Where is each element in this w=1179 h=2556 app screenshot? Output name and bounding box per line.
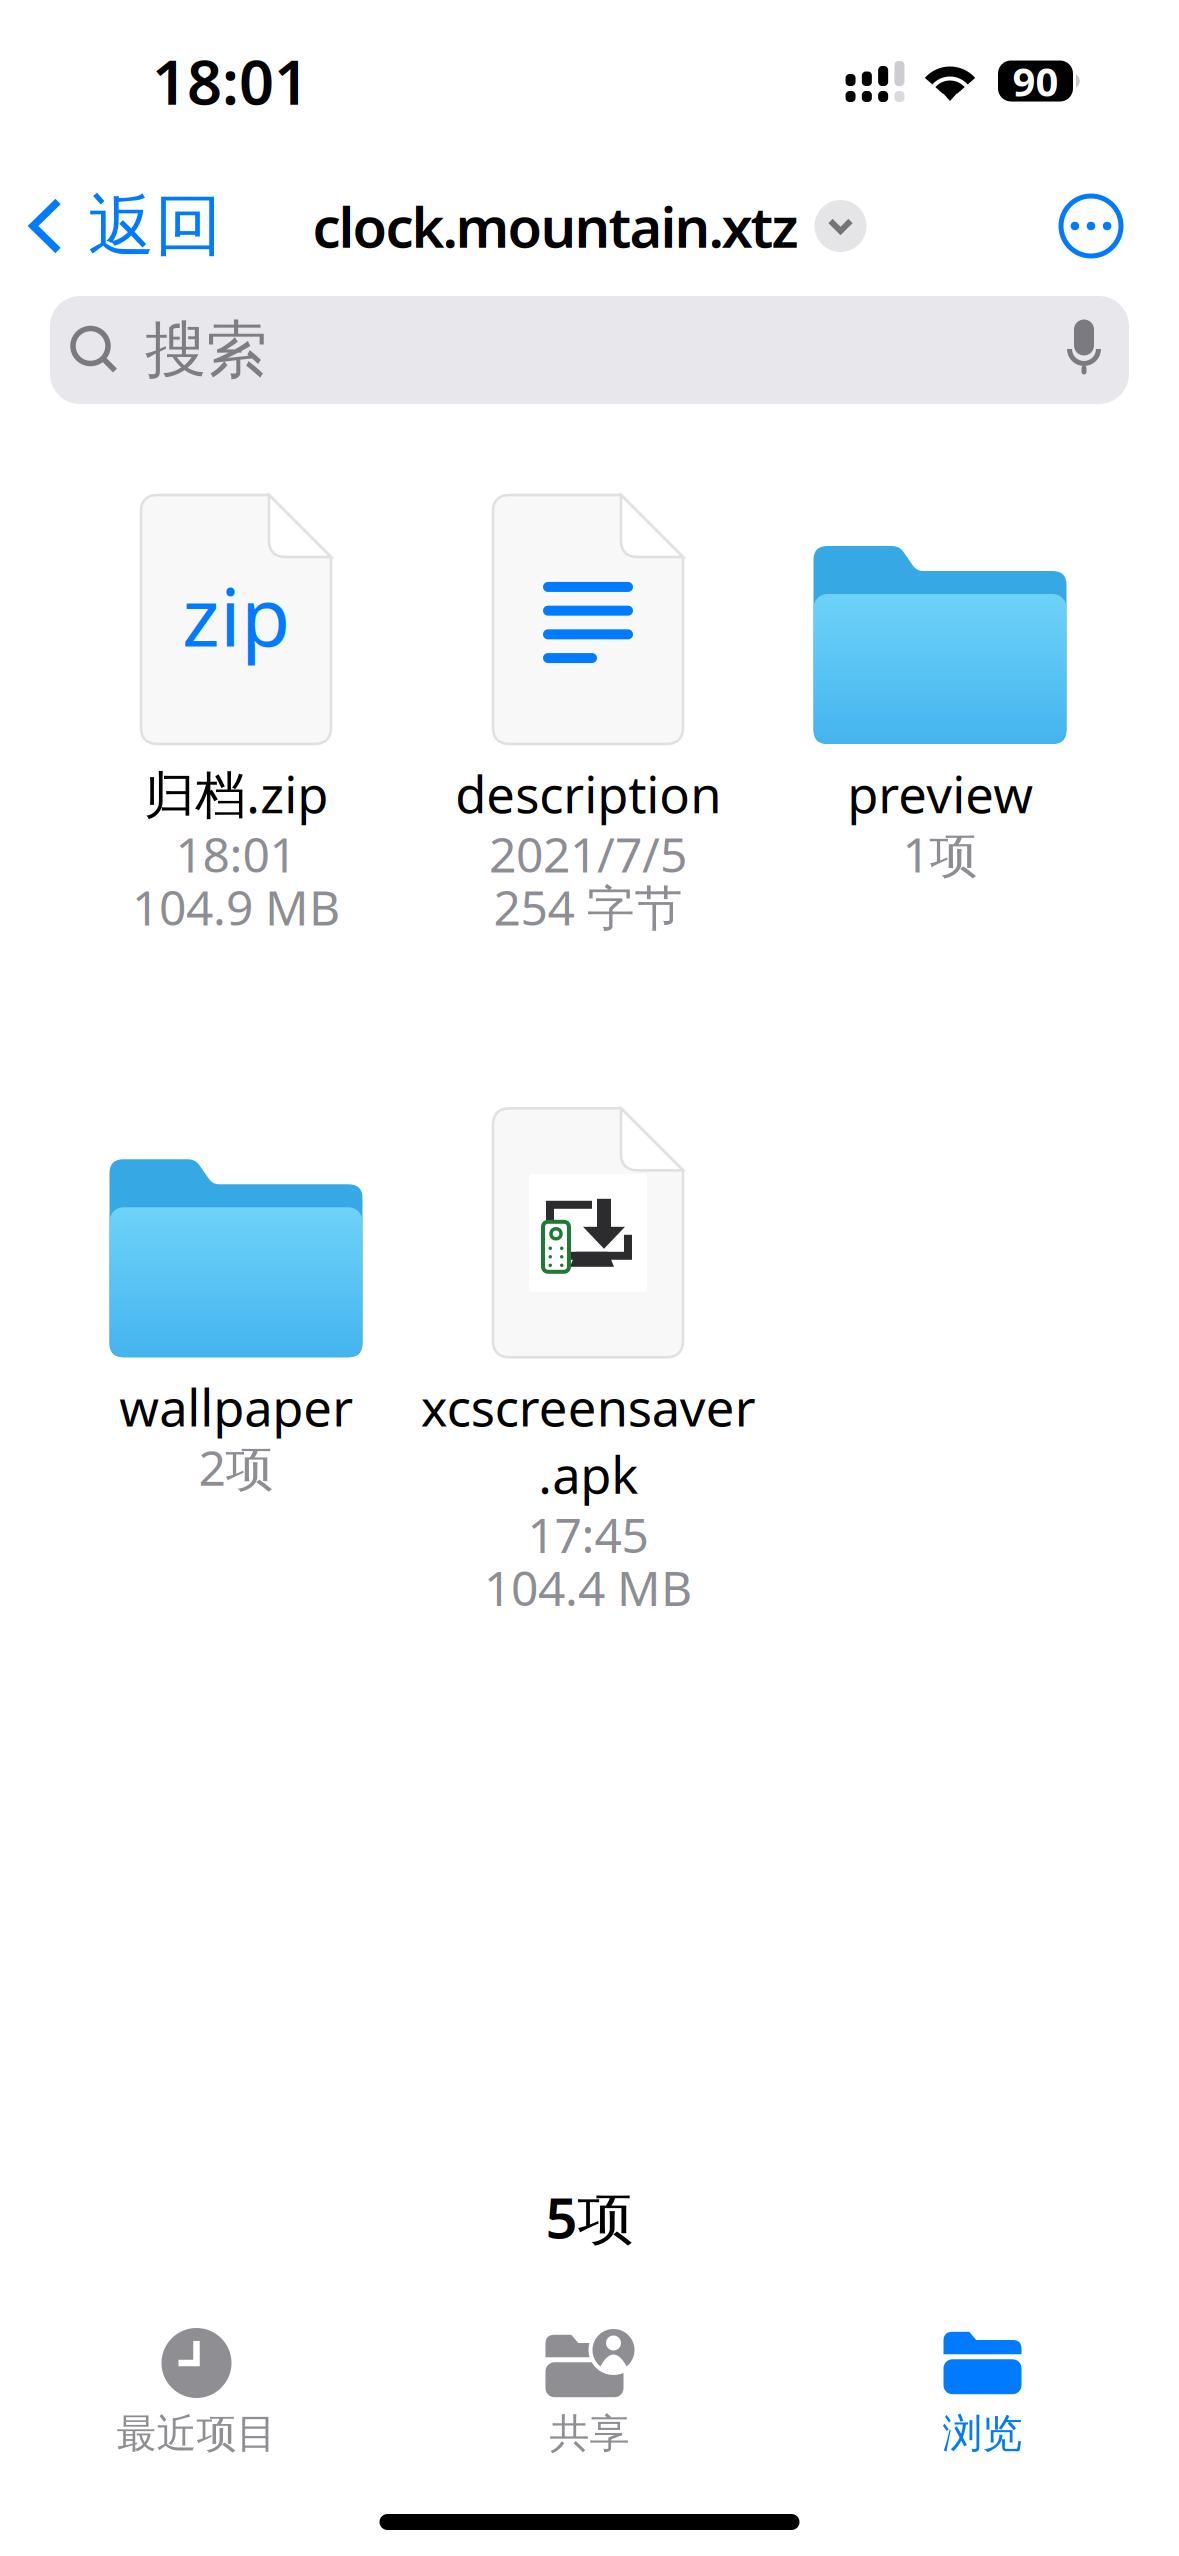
- button[interactable]: zip: [60, 494, 412, 933]
- staticText: 最近项目: [116, 2409, 276, 2458]
- button[interactable]: 浏览: [786, 2326, 1179, 2484]
- button[interactable]: preview: [764, 494, 1116, 933]
- staticText: 18:01: [175, 822, 296, 886]
- staticText: 5项: [545, 2180, 633, 2254]
- staticText: xcscreensaver .apk: [420, 1373, 755, 1508]
- staticText: 2项: [198, 1435, 273, 1499]
- staticText: 18:01: [152, 40, 309, 122]
- staticText: 共享: [549, 2409, 629, 2458]
- button[interactable]: 最近项目: [0, 2326, 393, 2484]
- staticText: 归档.zip: [144, 760, 328, 827]
- button[interactable]: xcscreensaver .apk: [412, 1107, 764, 1614]
- staticText: 17:45: [527, 1502, 648, 1566]
- button[interactable]: 返回: [0, 171, 240, 281]
- button[interactable]: 共享: [393, 2326, 786, 2484]
- staticText: 1项: [902, 822, 977, 886]
- staticText: 浏览: [942, 2409, 1022, 2458]
- staticText: clock.mountain.xtz: [312, 189, 798, 263]
- staticText: preview: [847, 760, 1033, 827]
- staticText: zip: [182, 562, 290, 669]
- staticText: description: [455, 760, 721, 827]
- button[interactable]: wallpaper: [60, 1107, 412, 1614]
- staticText: 104.4 MB: [484, 1555, 692, 1619]
- staticText: wallpaper: [119, 1373, 353, 1441]
- staticText: 90: [1012, 54, 1058, 107]
- button[interactable]: More: [1035, 184, 1179, 268]
- staticText: 返回: [88, 185, 222, 267]
- button[interactable]: description: [412, 494, 764, 933]
- staticText: 104.9 MB: [132, 875, 340, 939]
- staticText: 2021/7/5: [489, 822, 687, 886]
- button[interactable]: 搜索: [50, 296, 1129, 404]
- staticText: 搜索: [145, 312, 267, 388]
- staticText: 254 字节: [493, 875, 682, 939]
- button[interactable]: Folder options: [814, 200, 866, 252]
